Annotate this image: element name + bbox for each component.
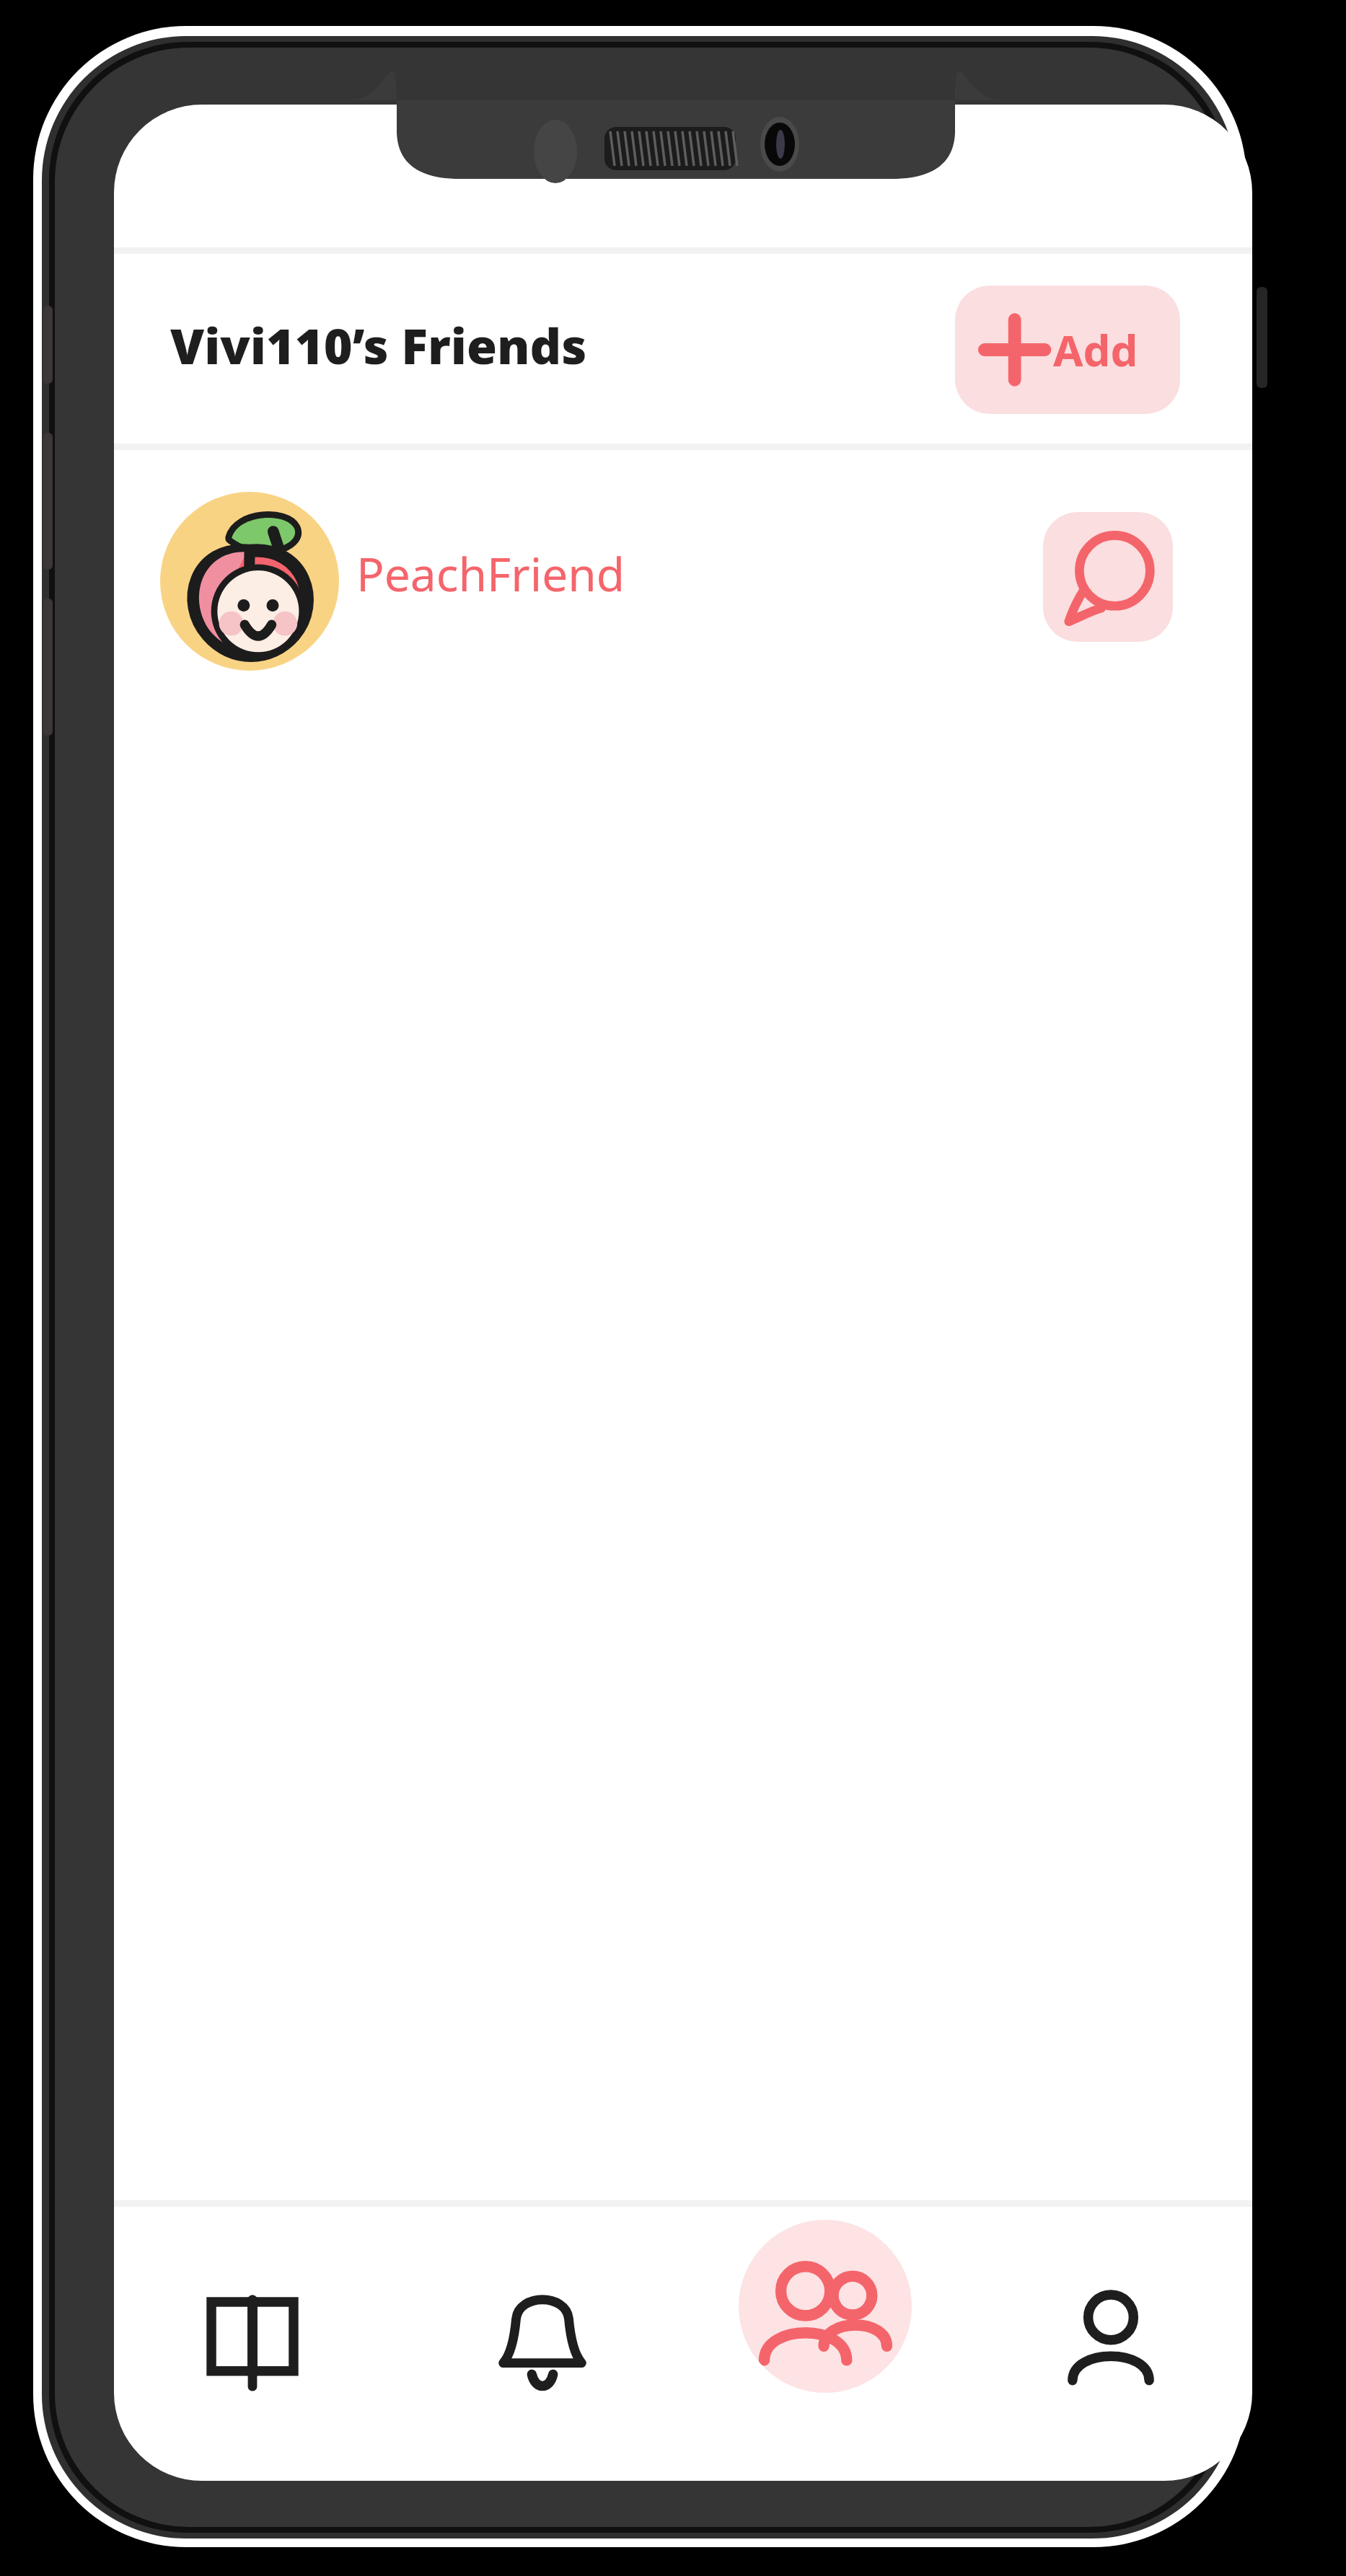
button[interactable]: PeachFriend avatar [160,492,339,671]
button[interactable]: Message PeachFriend [1043,512,1173,642]
button[interactable]: Profile [1065,2273,1157,2407]
button[interactable]: Library [206,2273,299,2407]
button[interactable]: PeachFriend [356,542,625,605]
button[interactable]: Notifications [496,2273,589,2407]
button[interactable]: Friends [739,2220,912,2393]
staticText: PeachFriend [356,542,625,605]
button[interactable]: Add [955,286,1180,414]
staticText: Add [1053,320,1138,379]
staticText: Vivi110’s Friends [170,312,587,379]
